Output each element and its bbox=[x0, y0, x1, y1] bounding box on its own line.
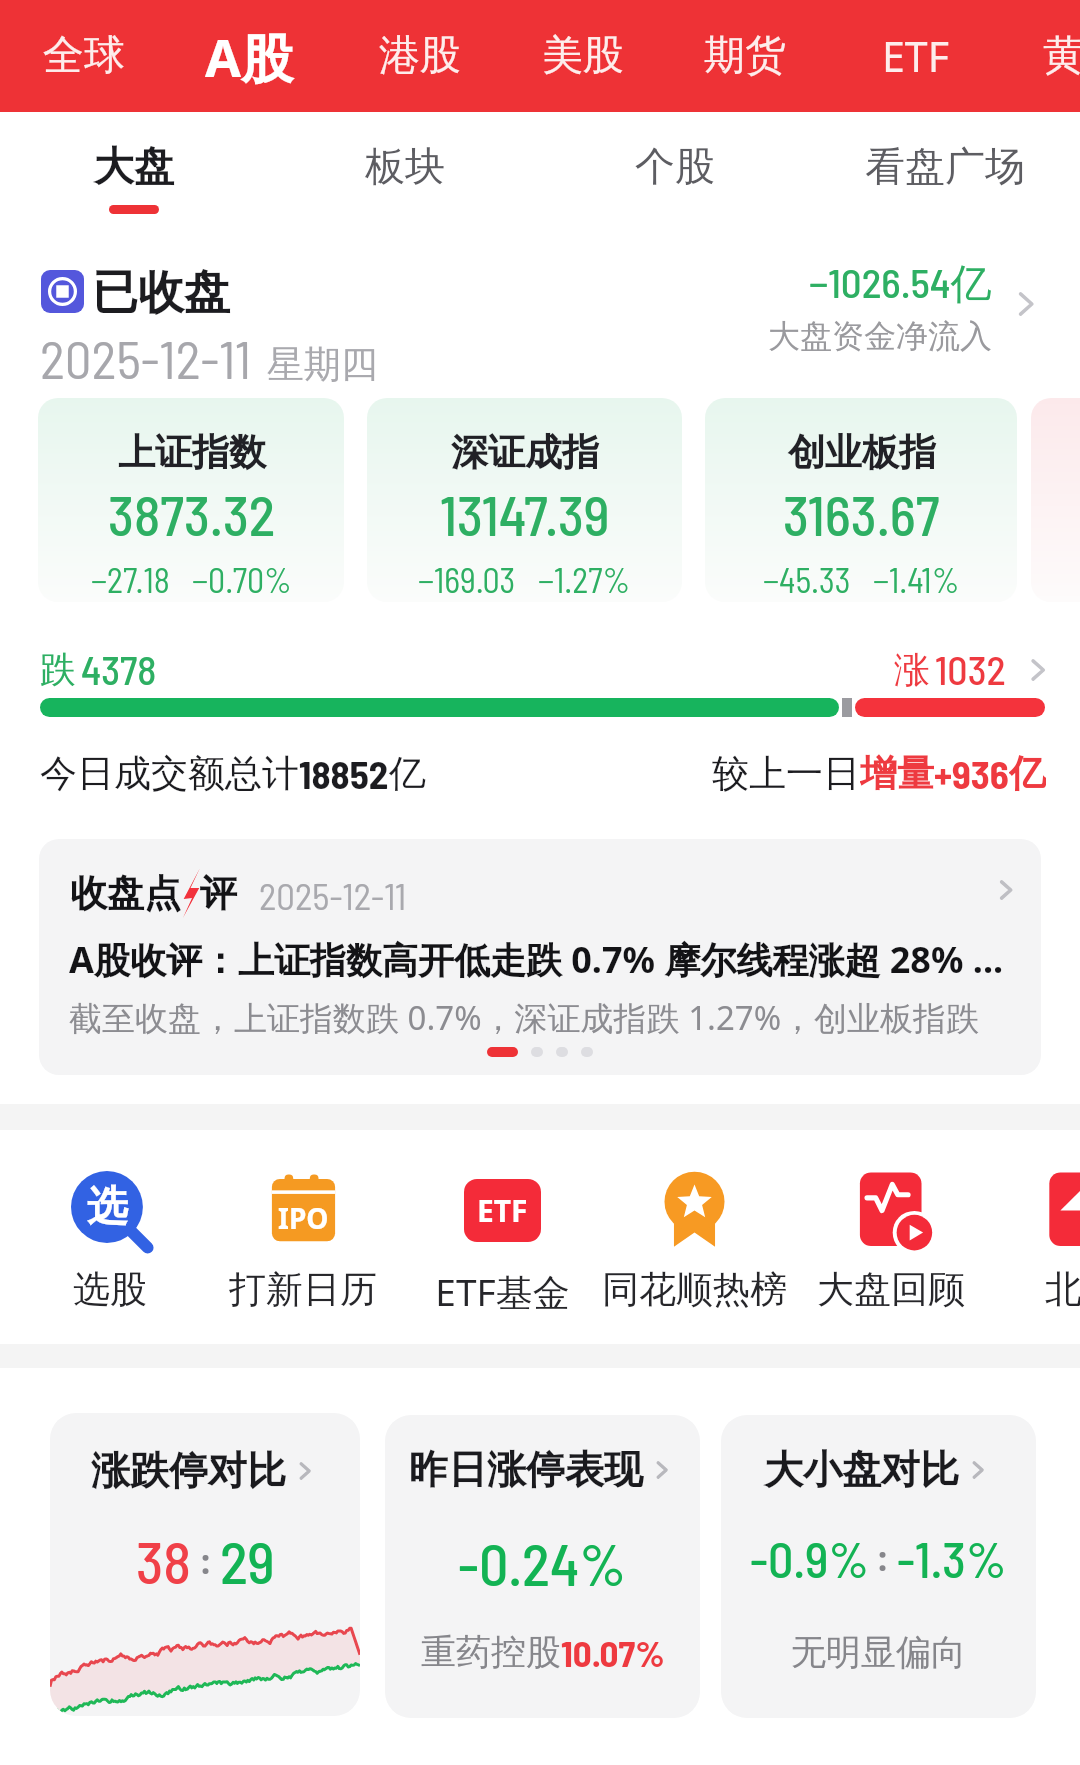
button[interactable]: 黄 bbox=[1003, 0, 1080, 112]
staticText: 涨 bbox=[894, 647, 930, 692]
button[interactable]: 期货 bbox=[685, 0, 805, 112]
staticText: 18852 bbox=[299, 750, 389, 796]
staticText: ETF bbox=[882, 28, 949, 84]
staticText: 38 bbox=[136, 1526, 192, 1596]
staticText: 大盘回顾 bbox=[817, 1266, 965, 1313]
button[interactable]: 跌 bbox=[0, 636, 1080, 736]
staticText: 美股 bbox=[542, 30, 624, 82]
button[interactable]: 全球 bbox=[24, 0, 144, 112]
button[interactable]: 深证成指 bbox=[367, 398, 682, 602]
staticText: 大盘资金净流入 bbox=[768, 316, 992, 356]
staticText: −45.33 bbox=[763, 559, 851, 600]
staticText: 亿 bbox=[1009, 750, 1046, 796]
button[interactable]: 收盘点 bbox=[39, 839, 1041, 1075]
staticText: 无明显偏向 bbox=[791, 1630, 966, 1674]
staticText: 个股 bbox=[635, 141, 715, 191]
staticText: 黄 bbox=[1043, 30, 1080, 82]
button[interactable]: 北交 bbox=[982, 1171, 1080, 1313]
staticText: 29 bbox=[220, 1526, 275, 1596]
button[interactable]: 大盘回顾 bbox=[791, 1171, 991, 1313]
staticText: : bbox=[869, 1535, 897, 1581]
other: 资金流入详情 bbox=[1005, 283, 1047, 325]
staticText: -0.24% bbox=[458, 1528, 627, 1598]
button[interactable]: 大盘 bbox=[79, 112, 189, 225]
staticText: 昨日涨停表现 bbox=[409, 1445, 643, 1494]
staticText: −1.41% bbox=[873, 559, 960, 600]
staticText: 截至收盘，上证指数跌 0.7%，深证成指跌 1.27%，创业板指跌 1.41..… bbox=[69, 995, 1041, 1040]
button[interactable]: 个股 bbox=[620, 112, 730, 225]
staticText: 2025-12-11 bbox=[259, 873, 407, 917]
staticText: 今日成交额总计 bbox=[40, 750, 299, 796]
staticText: 涨跌停对比 bbox=[91, 1446, 286, 1495]
button[interactable]: 已收盘 bbox=[0, 248, 1080, 378]
staticText: 较上一日 bbox=[712, 750, 860, 796]
button[interactable]: ETF bbox=[855, 0, 975, 112]
staticText: 亿 bbox=[389, 750, 426, 796]
button[interactable]: 上证指数 bbox=[38, 398, 344, 602]
staticText: 1032 bbox=[935, 645, 1006, 693]
button[interactable]: 涨跌停对比 bbox=[50, 1413, 360, 1716]
staticText: A股收评：上证指数高开低走跌 0.7% 摩尔线程涨超 28% ... bbox=[69, 935, 1041, 984]
staticText: 2025-12-11 bbox=[40, 326, 251, 390]
staticText: 已收盘 bbox=[92, 264, 230, 322]
button[interactable] bbox=[1031, 398, 1080, 602]
button[interactable]: 同花顺热榜 bbox=[594, 1171, 794, 1313]
staticText: 大小盘对比 bbox=[764, 1445, 959, 1494]
staticText: A股 bbox=[205, 21, 293, 92]
staticText: 星期四 bbox=[267, 341, 378, 388]
staticText: −27.18 bbox=[91, 559, 170, 600]
staticText: 打新日历 bbox=[229, 1266, 377, 1313]
staticText: +936 bbox=[934, 750, 1009, 796]
staticText: 10.07% bbox=[561, 1630, 665, 1674]
staticText: 3873.32 bbox=[108, 481, 276, 547]
button[interactable]: A股 bbox=[184, 0, 314, 112]
button[interactable]: IPO bbox=[203, 1171, 403, 1313]
staticText: 选股 bbox=[73, 1266, 147, 1313]
other: 涨跌家数详情 bbox=[1019, 651, 1057, 689]
staticText: 深证成指 bbox=[451, 429, 599, 476]
staticText: 全球 bbox=[43, 30, 125, 82]
button[interactable]: 大小盘对比 bbox=[721, 1415, 1036, 1718]
staticText: ETF基金 bbox=[435, 1266, 570, 1317]
button[interactable]: 美股 bbox=[523, 0, 643, 112]
staticText: -1.3% bbox=[897, 1528, 1007, 1588]
staticText: 北交 bbox=[1045, 1266, 1080, 1313]
button[interactable]: 创业板指 bbox=[705, 398, 1017, 602]
button[interactable]: 看盘广场 bbox=[855, 112, 1035, 225]
staticText: 评 bbox=[200, 870, 237, 917]
staticText: 上证指数 bbox=[118, 429, 266, 476]
staticText: 选 bbox=[87, 1181, 128, 1233]
staticText: -0.9% bbox=[750, 1528, 869, 1588]
staticText: 4378 bbox=[81, 645, 157, 693]
staticText: 增量 bbox=[860, 750, 934, 796]
staticText: 创业板指 bbox=[788, 429, 936, 476]
staticText: −0.70% bbox=[192, 559, 292, 600]
button[interactable]: 选 bbox=[10, 1171, 210, 1313]
staticText: 港股 bbox=[379, 30, 461, 82]
button[interactable]: 港股 bbox=[360, 0, 480, 112]
staticText: 期货 bbox=[704, 30, 786, 82]
staticText: 大盘 bbox=[94, 141, 174, 191]
staticText: 收盘点 bbox=[70, 870, 181, 917]
staticText: −169.03 bbox=[418, 559, 516, 600]
staticText: 13147.39 bbox=[440, 481, 610, 547]
staticText: 同花顺热榜 bbox=[602, 1266, 787, 1313]
button[interactable]: 昨日涨停表现 bbox=[385, 1415, 700, 1718]
staticText: −1.27% bbox=[538, 559, 631, 600]
staticText: : bbox=[192, 1538, 220, 1584]
staticText: −1026.54亿 bbox=[809, 257, 992, 310]
staticText: 重药控股 bbox=[421, 1630, 561, 1674]
button[interactable]: 板块 bbox=[350, 112, 460, 225]
staticText: ETF bbox=[477, 1190, 528, 1231]
staticText: 看盘广场 bbox=[865, 141, 1025, 191]
staticText: 跌 bbox=[40, 647, 76, 692]
staticText: 3163.67 bbox=[783, 481, 940, 547]
staticText: 板块 bbox=[365, 141, 445, 191]
staticText: IPO bbox=[278, 1199, 329, 1237]
button[interactable]: ETF bbox=[402, 1171, 602, 1317]
